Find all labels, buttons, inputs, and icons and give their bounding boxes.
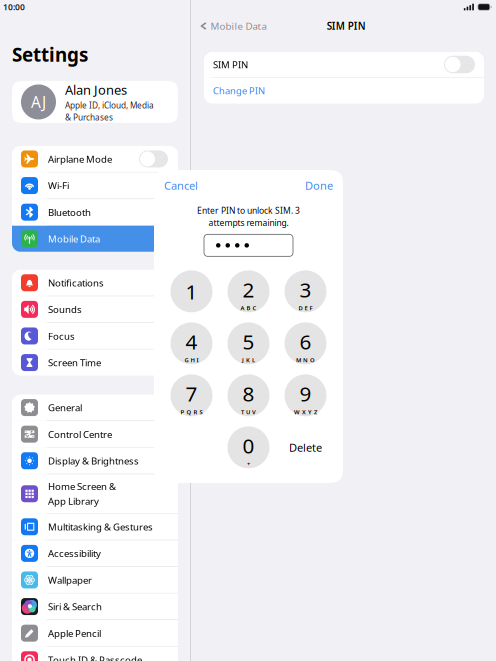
staticText: 7 [185, 380, 197, 407]
staticText: 0 [242, 432, 254, 459]
staticText: M N O [296, 356, 315, 364]
button[interactable]: Wi-Fi [12, 173, 178, 199]
staticText: Wallpaper [48, 574, 92, 586]
staticText: Focus [48, 330, 75, 342]
staticText: Bluetooth [48, 206, 91, 218]
button[interactable]: Sounds [12, 296, 178, 322]
button[interactable]: Airplane Mode [12, 146, 178, 172]
staticText: + [247, 460, 250, 468]
button[interactable]: 7 [170, 374, 212, 416]
staticText: Control Centre [48, 428, 112, 440]
button[interactable]: Focus [12, 323, 178, 349]
button[interactable]: 6 [284, 322, 326, 364]
staticText: & Purchases [65, 112, 113, 123]
button[interactable]: Done [305, 178, 333, 193]
staticText: 10:00 [3, 1, 25, 13]
staticText: J K L [242, 356, 255, 364]
button[interactable]: Home Screen & [12, 474, 178, 513]
staticText: Home Screen & [48, 480, 116, 493]
staticText: SIM PIN [213, 58, 248, 71]
staticText: 5 [242, 328, 254, 355]
staticText: 4 [185, 328, 197, 355]
staticText: W X Y Z [294, 408, 317, 416]
staticText: AJ [31, 92, 46, 112]
staticText: Alan Jones [65, 81, 127, 98]
button[interactable]: Wallpaper [12, 567, 178, 593]
button[interactable]: Screen Time [12, 350, 178, 376]
button[interactable]: Accessibility [12, 540, 178, 566]
staticText: Done [305, 178, 333, 193]
staticText: Mobile Data [210, 19, 266, 32]
button[interactable]: Display & Brightness [12, 448, 178, 474]
button[interactable]: 9 [284, 374, 326, 416]
button[interactable]: Control Centre [12, 421, 178, 447]
button[interactable]: 2 [227, 270, 269, 312]
staticText: Apple Pencil [48, 627, 101, 639]
button[interactable]: General [12, 395, 178, 421]
staticText: Siri & Search [48, 600, 102, 613]
staticText: G H I [184, 356, 198, 364]
staticText: T U V [241, 408, 256, 416]
button[interactable]: Multitasking & Gestures [12, 514, 178, 540]
staticText: Wi-Fi [48, 179, 69, 192]
staticText: Delete [289, 440, 322, 455]
button[interactable]: Siri & Search [12, 594, 178, 620]
button[interactable]: Mobile Data [12, 226, 178, 252]
staticText: Cancel [164, 178, 198, 193]
staticText: 3 [299, 276, 311, 303]
button[interactable]: AJ [12, 81, 178, 123]
button[interactable]: Notifications [12, 270, 178, 296]
staticText: Touch ID & Passcode [48, 653, 142, 661]
staticText: 6 [299, 328, 311, 355]
staticText: Change PIN [213, 84, 265, 97]
button[interactable]: 0 [227, 426, 269, 468]
staticText: Display & Brightness [48, 454, 139, 467]
button[interactable]: Touch ID & Passcode [12, 647, 178, 661]
staticText: 8 [242, 380, 254, 407]
button[interactable]: 5 [227, 322, 269, 364]
staticText: 9 [299, 380, 311, 407]
staticText: A B C [240, 304, 256, 312]
button[interactable]: Mobile Data [191, 15, 272, 37]
button[interactable]: Cancel [164, 178, 198, 193]
staticText: P Q R S [180, 408, 202, 416]
staticText: 1 [185, 278, 197, 305]
staticText: SIM PIN [327, 19, 366, 32]
button[interactable]: Delete [284, 426, 326, 468]
staticText: attempts remaining. [208, 217, 288, 228]
staticText: Mobile Data [48, 232, 100, 245]
staticText: Settings [12, 42, 88, 67]
staticText: Airplane Mode [48, 153, 112, 165]
staticText: Sounds [48, 303, 82, 316]
button[interactable]: Bluetooth [12, 199, 178, 225]
button[interactable]: 3 [284, 270, 326, 312]
staticText: Multitasking & Gestures [48, 520, 153, 533]
staticText: Notifications [48, 276, 104, 289]
staticText: Enter PIN to unlock SIM. 3 [197, 205, 300, 216]
button[interactable]: 4 [170, 322, 212, 364]
staticText: App Library [48, 495, 99, 507]
staticText: Apple ID, iCloud, Media [65, 100, 154, 111]
staticText: 2 [242, 276, 254, 303]
button[interactable]: 1 [170, 270, 212, 312]
staticText: Screen Time [48, 356, 101, 369]
staticText: Accessibility [48, 547, 101, 560]
staticText: General [48, 401, 82, 414]
button[interactable]: Apple Pencil [12, 620, 178, 646]
button[interactable]: 8 [227, 374, 269, 416]
button[interactable]: Change PIN [204, 78, 484, 104]
staticText: D E F [298, 304, 312, 312]
